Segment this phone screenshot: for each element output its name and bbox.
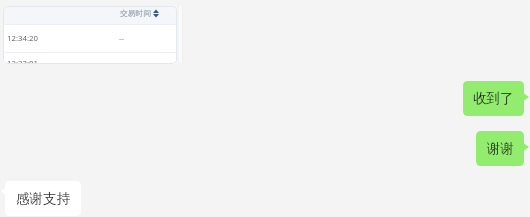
button[interactable]: 12:34:20 [3,25,177,52]
button[interactable]: 谢谢 [476,131,524,166]
staticText: 交易时间 [120,8,152,18]
staticText: 感谢支持 [16,190,70,207]
button[interactable]: 收到了 [463,81,524,116]
button[interactable]: 交易时间 [3,6,177,24]
staticText: -- [119,58,125,64]
staticText: 收到了 [473,90,514,107]
staticText: 谢谢 [487,140,514,157]
staticText: 12:34:20 [7,33,38,44]
button[interactable]: 12:33:01 [3,53,177,64]
staticText: 12:33:01 [7,58,38,64]
button[interactable]: 感谢支持 [5,181,81,216]
staticText: -- [119,33,125,44]
